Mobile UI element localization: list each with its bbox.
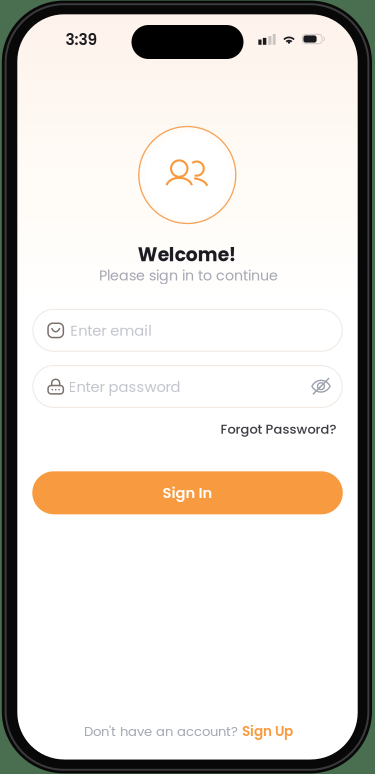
button[interactable]: Sign Up [242, 722, 293, 741]
staticText: 3:39 [66, 29, 98, 50]
staticText: Enter password [68, 377, 180, 397]
staticText: Enter email [70, 320, 152, 341]
button[interactable]: Sign In [32, 471, 343, 514]
button[interactable]: Enter email [32, 309, 343, 352]
staticText: Welcome! [138, 242, 236, 268]
button[interactable]: Forgot Password? [216, 418, 340, 440]
button[interactable]: Enter password [32, 365, 343, 408]
staticText: Forgot Password? [220, 420, 336, 438]
staticText: Please sign in to continue [99, 266, 278, 285]
staticText: Don't have an account? [84, 722, 242, 740]
staticText: Sign In [163, 482, 213, 503]
staticText: Sign Up [242, 722, 293, 741]
